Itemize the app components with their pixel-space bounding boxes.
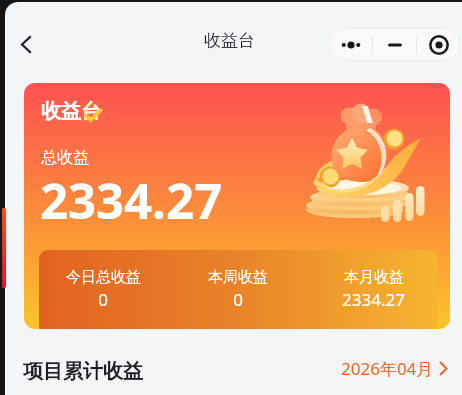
button[interactable]: 2026年04月 [341,351,448,385]
staticText: 2334.27 [342,288,405,311]
button[interactable]: 本月收益 [304,250,437,329]
staticText: 今日总收益 [66,268,141,287]
staticText: 2026年04月 [341,357,434,380]
staticText: 本月收益 [344,268,404,287]
staticText: 收益台 [41,99,101,124]
staticText: 0 [98,288,108,311]
staticText: 2334.27 [40,167,222,234]
button[interactable]: 本周收益 [171,250,304,329]
button[interactable]: 今日总收益 [39,250,171,329]
button[interactable]: More [330,28,372,61]
staticText: 收益台 [204,30,255,51]
staticText: 总收益 [41,148,89,168]
button[interactable]: Back [6,24,46,64]
button[interactable]: 收益台 [24,83,450,329]
staticText: 本周收益 [208,268,268,287]
staticText: 0 [233,288,243,311]
staticText: 项目累计收益 [23,359,143,384]
button[interactable]: Close [417,28,460,61]
button[interactable]: Minimize [373,28,416,61]
